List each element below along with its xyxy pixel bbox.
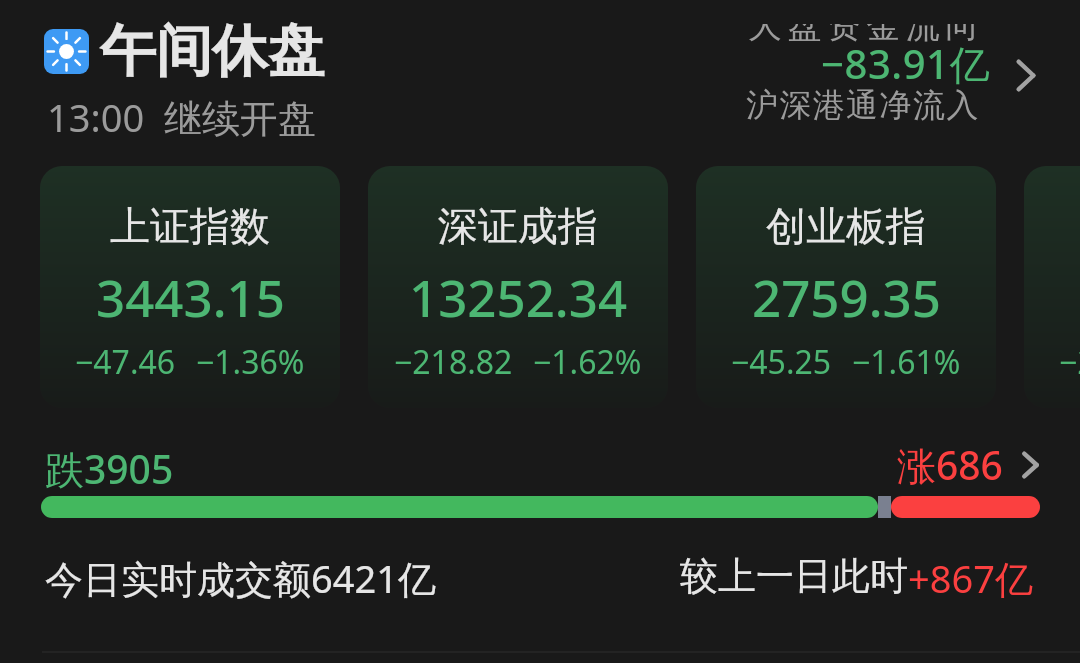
button[interactable]: 涨686 [897,438,1039,491]
staticText: 2759.35 [752,262,941,331]
other: Open details [1022,451,1039,479]
button[interactable]: 较上一日此时 [680,552,1033,604]
staticText: 深证成指 [438,201,598,251]
staticText: 今日实时成交额6421亿 [45,552,436,604]
staticText: 午间休盘 [100,16,324,87]
staticText: 上证指数 [110,201,270,251]
staticText: −1.61% [852,340,961,384]
staticText: −45.25 [731,340,832,384]
staticText: 13:00 继续开盘 [47,91,316,143]
staticText: 较上一日此时 [680,552,908,600]
staticText: 沪深港通净流入 [746,85,980,125]
staticText: 跌3905 [45,442,174,495]
staticText: −1.62% [533,340,642,384]
button[interactable]: 上证指数 [40,166,340,408]
staticText: −21.02 [1059,340,1080,384]
button[interactable]: 跌3905 [45,442,174,495]
staticText: 创业板指 [766,201,926,251]
button[interactable]: 北证50 [1024,166,1080,408]
button[interactable]: 深证成指 [368,166,668,408]
staticText: 3443.15 [96,262,285,331]
staticText: 13252.34 [409,262,628,331]
staticText: 大盘资金流向 [745,4,982,47]
other: Market session status [44,29,89,74]
staticText: 涨686 [897,438,1003,491]
button[interactable]: 创业板指 [696,166,996,408]
other: Open details [1016,59,1036,92]
button[interactable]: 大盘资金流向 [706,0,1036,134]
staticText: +867亿 [908,552,1033,604]
button[interactable]: 今日实时成交额6421亿 [45,552,436,604]
staticText: −1.36% [196,340,305,384]
staticText: −218.82 [394,340,513,384]
staticText: −83.91亿 [821,36,990,91]
staticText: −47.46 [75,340,176,384]
